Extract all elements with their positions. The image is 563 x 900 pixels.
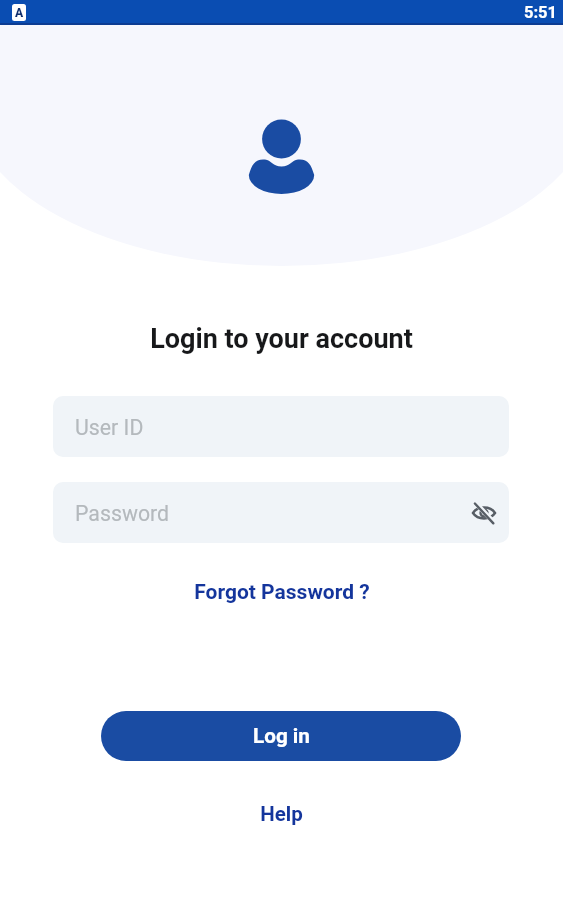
staticText: Login to your account xyxy=(150,323,413,355)
button[interactable]: Password xyxy=(53,482,509,543)
button[interactable]: Log in xyxy=(101,711,461,761)
button[interactable]: Forgot Password ? xyxy=(184,574,380,611)
staticText: User ID xyxy=(75,415,144,440)
staticText: A xyxy=(15,6,24,20)
staticText: Log in xyxy=(253,724,310,748)
staticText: Help xyxy=(260,802,303,826)
staticText: Forgot Password ? xyxy=(194,580,370,605)
staticText: Password xyxy=(75,501,170,526)
button[interactable]: Show password xyxy=(466,495,502,531)
button[interactable]: Help xyxy=(250,796,313,832)
staticText: 5:51 xyxy=(524,3,558,22)
button[interactable]: User ID xyxy=(53,396,509,457)
